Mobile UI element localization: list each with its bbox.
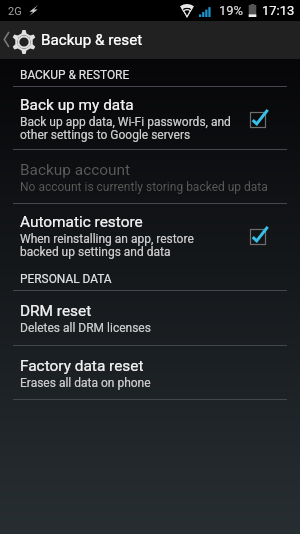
staticText: Factory data reset [20,357,144,375]
button[interactable]: Automatic restore [0,204,300,267]
staticText: When reinstalling an app, restore backed… [20,232,194,259]
staticText: No account is currently storing backed u… [20,180,268,194]
staticText: 17:13 [262,3,295,18]
staticText: Backup & reset [41,31,143,49]
button[interactable]: DRM reset [0,291,300,346]
staticText: BACKUP & RESTORE [20,68,130,82]
button[interactable]: Toggle setting [248,225,270,247]
staticText: PERSONAL DATA [20,272,112,286]
staticText: Backup account [20,161,131,179]
button[interactable]: Backup account [0,150,300,204]
button[interactable]: Navigate up [0,21,38,59]
button[interactable]: Back up my data [0,87,300,150]
button[interactable]: Factory data reset [0,346,300,400]
staticText: DRM reset [20,302,92,320]
staticText: Automatic restore [20,213,143,231]
staticText: Back up my data [20,96,134,114]
staticText: 19% [219,3,244,18]
staticText: 2G [8,5,22,18]
staticText: Back up app data, Wi-Fi passwords, and o… [20,115,231,142]
staticText: Deletes all DRM licenses [20,321,151,335]
button[interactable]: Toggle setting [248,108,270,130]
staticText: Erases all data on phone [20,376,151,390]
